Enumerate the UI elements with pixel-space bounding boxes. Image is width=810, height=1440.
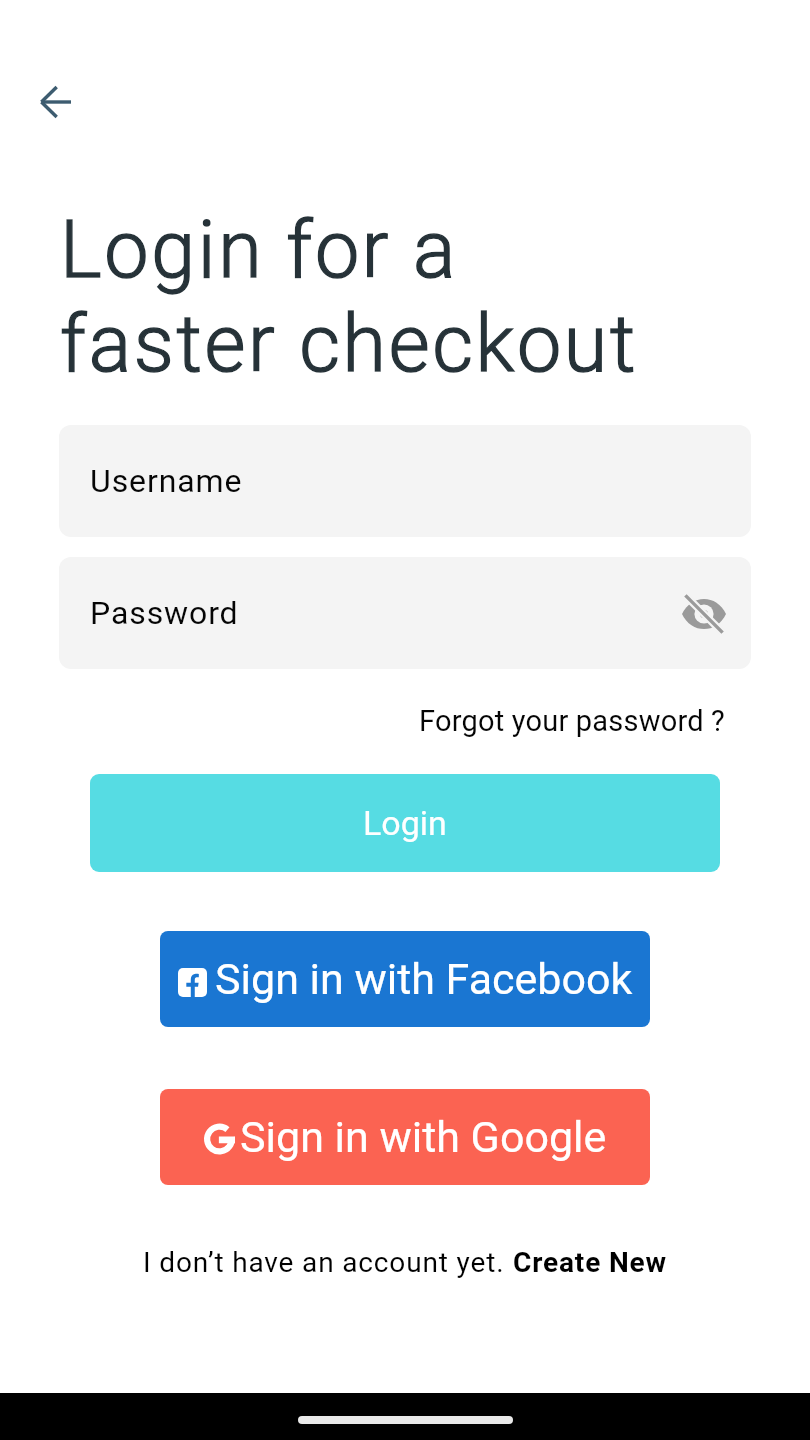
staticText: Sign in with Facebook xyxy=(215,954,633,1004)
staticText: Login for a faster checkout xyxy=(60,204,638,391)
button[interactable]: I don’t have an account yet. xyxy=(143,1246,668,1279)
button[interactable]: Back xyxy=(29,76,81,128)
staticText: I don’t have an account yet. xyxy=(143,1246,513,1279)
staticText: Username xyxy=(90,462,243,500)
button[interactable]: Sign in with Google xyxy=(160,1089,650,1185)
staticText: Sign in with Google xyxy=(240,1112,607,1162)
button[interactable]: Forgot your password ? xyxy=(415,704,729,738)
button[interactable]: Username xyxy=(59,425,751,537)
button[interactable]: Password xyxy=(59,557,751,669)
staticText: Login xyxy=(363,803,447,843)
staticText: Create New xyxy=(513,1246,668,1279)
button[interactable]: Sign in with Facebook xyxy=(160,931,650,1027)
staticText: Login for a faster checkout xyxy=(60,204,638,391)
button[interactable]: Login xyxy=(90,774,720,872)
button[interactable]: Show password xyxy=(673,583,735,645)
staticText: Password xyxy=(90,594,239,632)
